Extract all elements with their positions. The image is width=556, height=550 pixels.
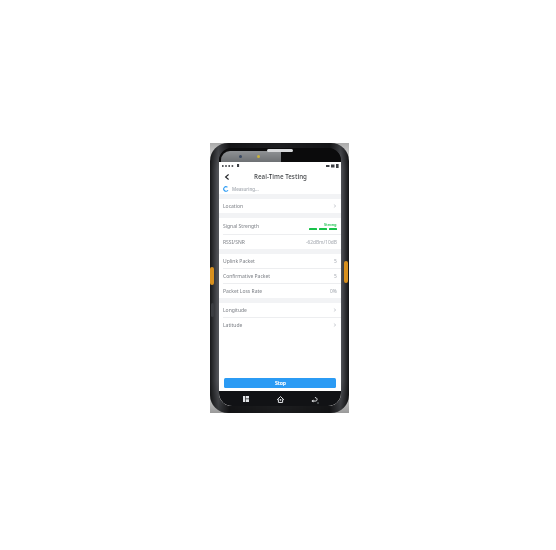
button[interactable]: Longitude bbox=[219, 303, 341, 317]
button[interactable]: Packet Loss Rate bbox=[219, 284, 341, 298]
button[interactable]: Stop bbox=[224, 378, 336, 388]
staticText: Confirmative Packet bbox=[223, 273, 271, 280]
staticText: RSSI/SNR bbox=[223, 239, 245, 246]
button[interactable]: Confirmative Packet bbox=[219, 269, 341, 283]
staticText: Strong bbox=[324, 222, 337, 227]
button[interactable]: RSSI/SNR bbox=[219, 235, 341, 249]
button[interactable]: Signal Strength bbox=[219, 218, 341, 234]
button[interactable]: Back bbox=[307, 392, 321, 406]
staticText: Stop bbox=[275, 380, 286, 387]
staticText: 5 bbox=[334, 273, 337, 280]
button[interactable]: Location bbox=[219, 199, 341, 213]
staticText: 0% bbox=[330, 288, 337, 295]
staticText: Latitude bbox=[223, 322, 243, 329]
staticText: Longitude bbox=[223, 307, 247, 314]
button[interactable]: Latitude bbox=[219, 318, 341, 332]
staticText: Measuring... bbox=[232, 186, 259, 192]
button[interactable]: Home bbox=[273, 392, 287, 406]
button[interactable]: Back bbox=[221, 171, 232, 182]
staticText: -62dBm/10dB bbox=[306, 239, 337, 246]
staticText: Signal Strength bbox=[223, 223, 259, 230]
staticText: Packet Loss Rate bbox=[223, 288, 263, 295]
staticText: 5 bbox=[334, 258, 337, 265]
staticText: Location bbox=[223, 203, 244, 210]
button[interactable]: Recent apps bbox=[239, 392, 253, 406]
staticText: Real-Time Testing bbox=[254, 172, 307, 180]
staticText: Uplink Packet bbox=[223, 258, 255, 265]
button[interactable]: Uplink Packet bbox=[219, 254, 341, 268]
